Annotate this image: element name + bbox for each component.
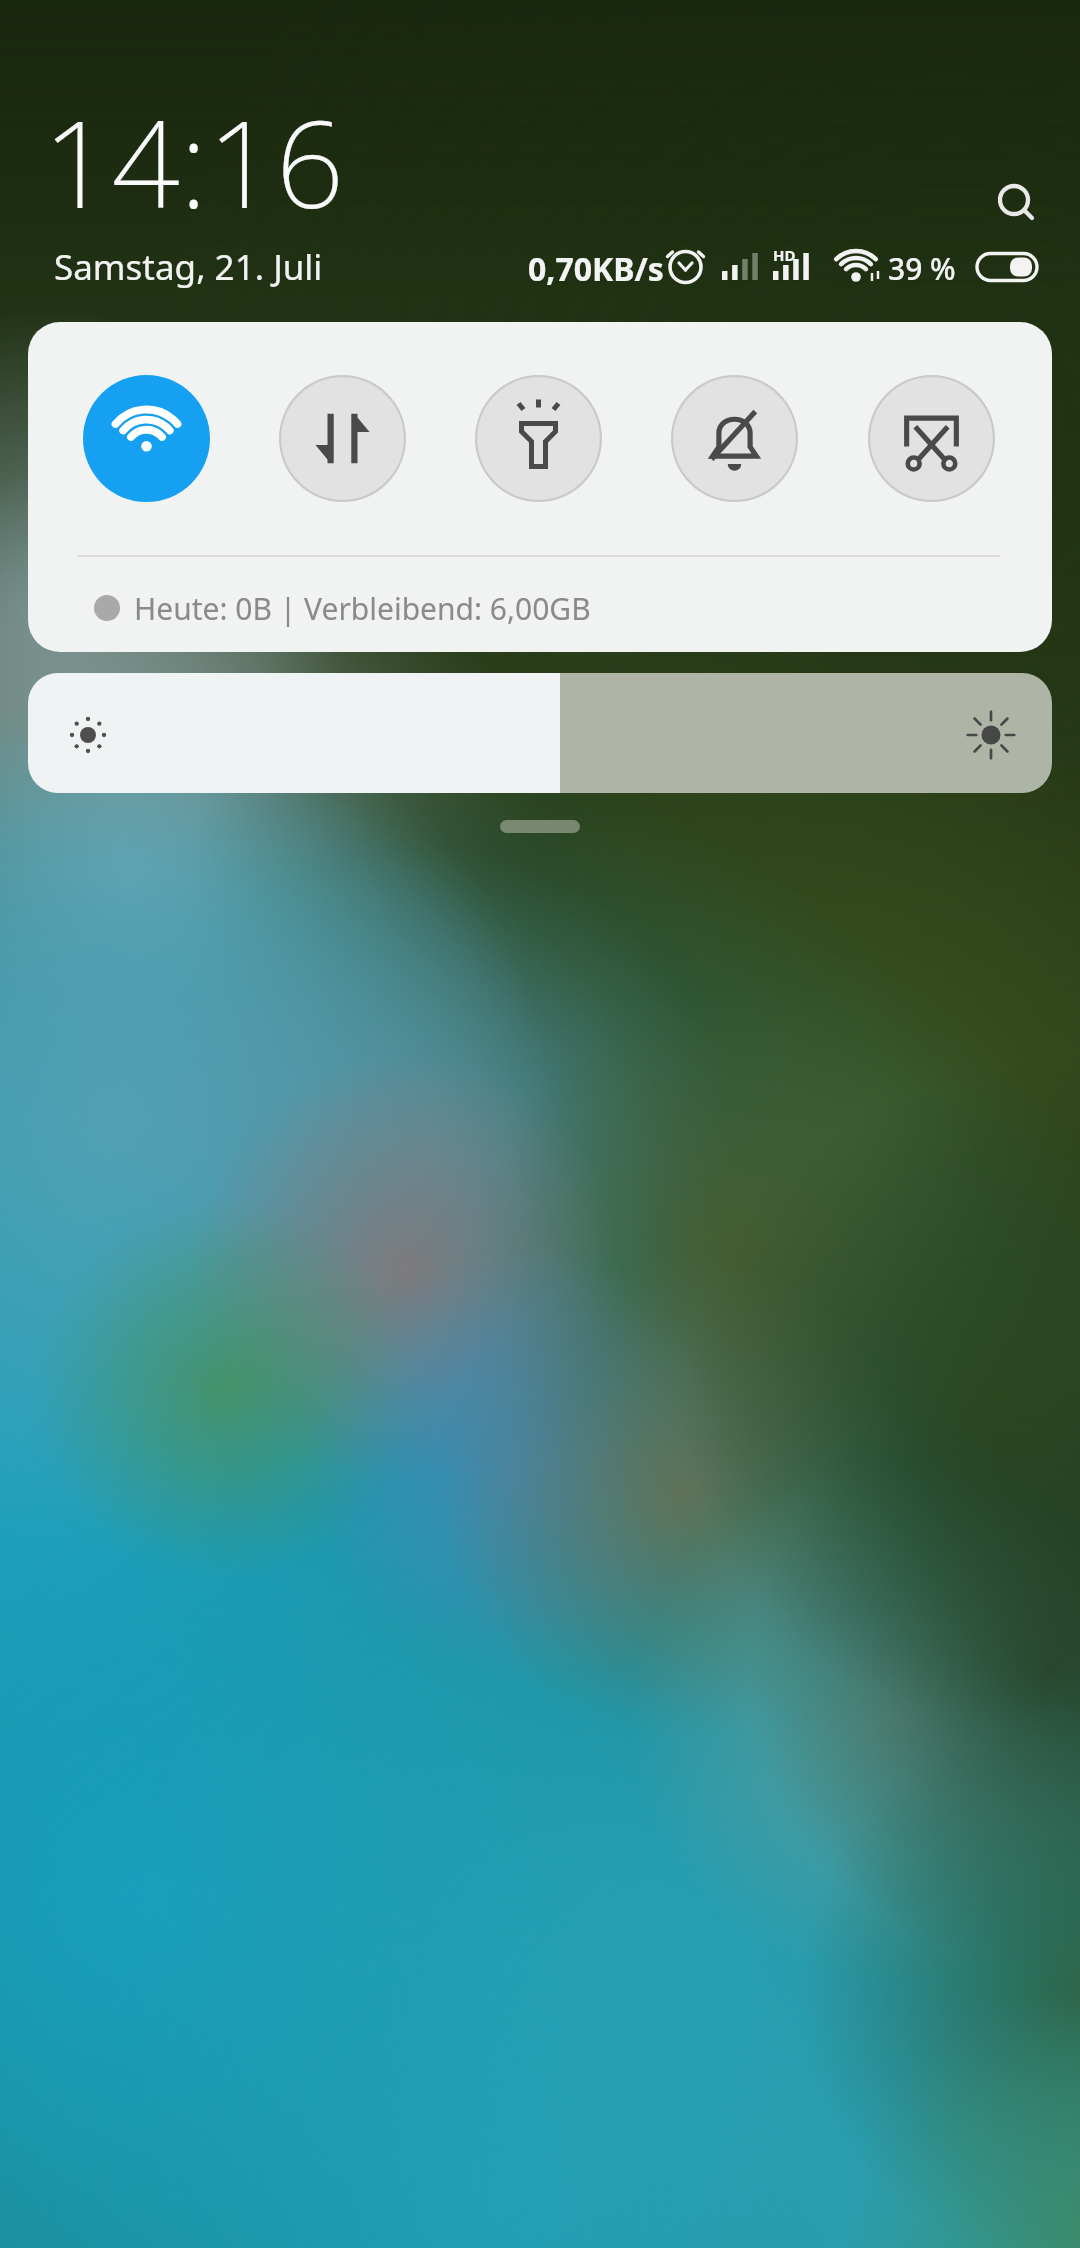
button[interactable] [28, 673, 1052, 793]
staticText: 39 % [888, 248, 956, 289]
staticText: 0,70KB/s [528, 247, 664, 291]
staticText: Samstag, 21. Juli [54, 243, 323, 291]
button[interactable] [83, 375, 210, 502]
button[interactable] [475, 375, 602, 502]
button[interactable] [868, 375, 995, 502]
button[interactable] [990, 176, 1042, 228]
button[interactable] [671, 375, 798, 502]
button[interactable] [279, 375, 406, 502]
button[interactable]: Heute: 0B | Verbleibend: 6,00GB [93, 583, 591, 633]
staticText: HD [773, 245, 796, 265]
staticText: 14:16 [43, 80, 345, 243]
staticText: Heute: 0B | Verbleibend: 6,00GB [134, 588, 591, 629]
